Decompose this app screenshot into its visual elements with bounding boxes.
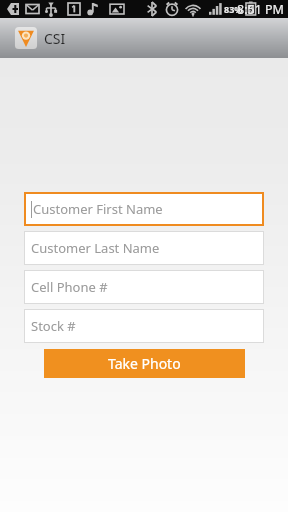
staticText: CSI	[44, 29, 66, 48]
button[interactable]: Cell Phone #	[24, 270, 264, 304]
staticText: Cell Phone #	[31, 278, 108, 296]
other: CSI app logo	[14, 26, 38, 50]
button[interactable]: Stock #	[24, 309, 264, 343]
staticText: Stock #	[31, 317, 76, 335]
button[interactable]: Customer First Name	[24, 192, 264, 226]
button[interactable]: Customer Last Name	[24, 231, 264, 265]
staticText: Customer First Name	[33, 200, 163, 218]
staticText: Take Photo	[108, 354, 181, 373]
staticText: Customer Last Name	[31, 239, 160, 257]
staticText: 8:51 PM	[237, 1, 284, 18]
button[interactable]: Take Photo	[44, 349, 245, 378]
staticText: 83%	[224, 3, 243, 15]
